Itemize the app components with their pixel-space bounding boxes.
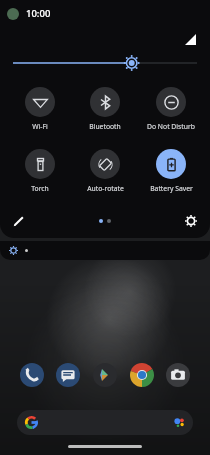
button[interactable]: Auto-rotate [73, 149, 137, 193]
button[interactable]: Google Search [17, 410, 193, 435]
staticText: Torch [31, 184, 49, 193]
button[interactable]: Battery Saver [139, 149, 203, 193]
button[interactable] [0, 241, 210, 260]
staticText: Auto-rotate [87, 184, 124, 193]
button[interactable]: Edit tiles [8, 210, 30, 232]
staticText: Wi-Fi [32, 122, 48, 131]
button[interactable]: Camera [163, 360, 193, 390]
staticText: Bluetooth [89, 122, 121, 131]
button[interactable]: Settings [180, 210, 202, 232]
button[interactable]: Wi-Fi [8, 87, 72, 131]
button[interactable]: Chrome [127, 360, 157, 390]
button[interactable]: Messages [53, 360, 83, 390]
staticText: 10:00 [26, 7, 51, 20]
button[interactable]: Phone [17, 360, 47, 390]
button[interactable]: Bluetooth [73, 87, 137, 131]
staticText: Battery Saver [150, 184, 193, 193]
button[interactable]: Torch [8, 149, 72, 193]
button[interactable]: Do Not Disturb [139, 87, 203, 131]
staticText: Do Not Disturb [147, 122, 195, 131]
button[interactable]: Brightness [13, 55, 197, 71]
button[interactable]: Play Store [90, 360, 120, 390]
